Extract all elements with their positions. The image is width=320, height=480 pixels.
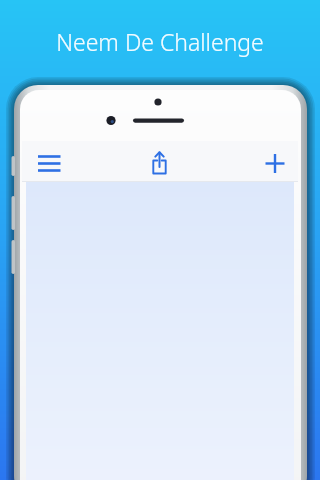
button[interactable]: Menu bbox=[30, 146, 68, 180]
button[interactable]: Share bbox=[142, 146, 178, 180]
button[interactable]: Add bbox=[258, 146, 294, 180]
staticText: Neem De Challenge bbox=[0, 26, 320, 480]
